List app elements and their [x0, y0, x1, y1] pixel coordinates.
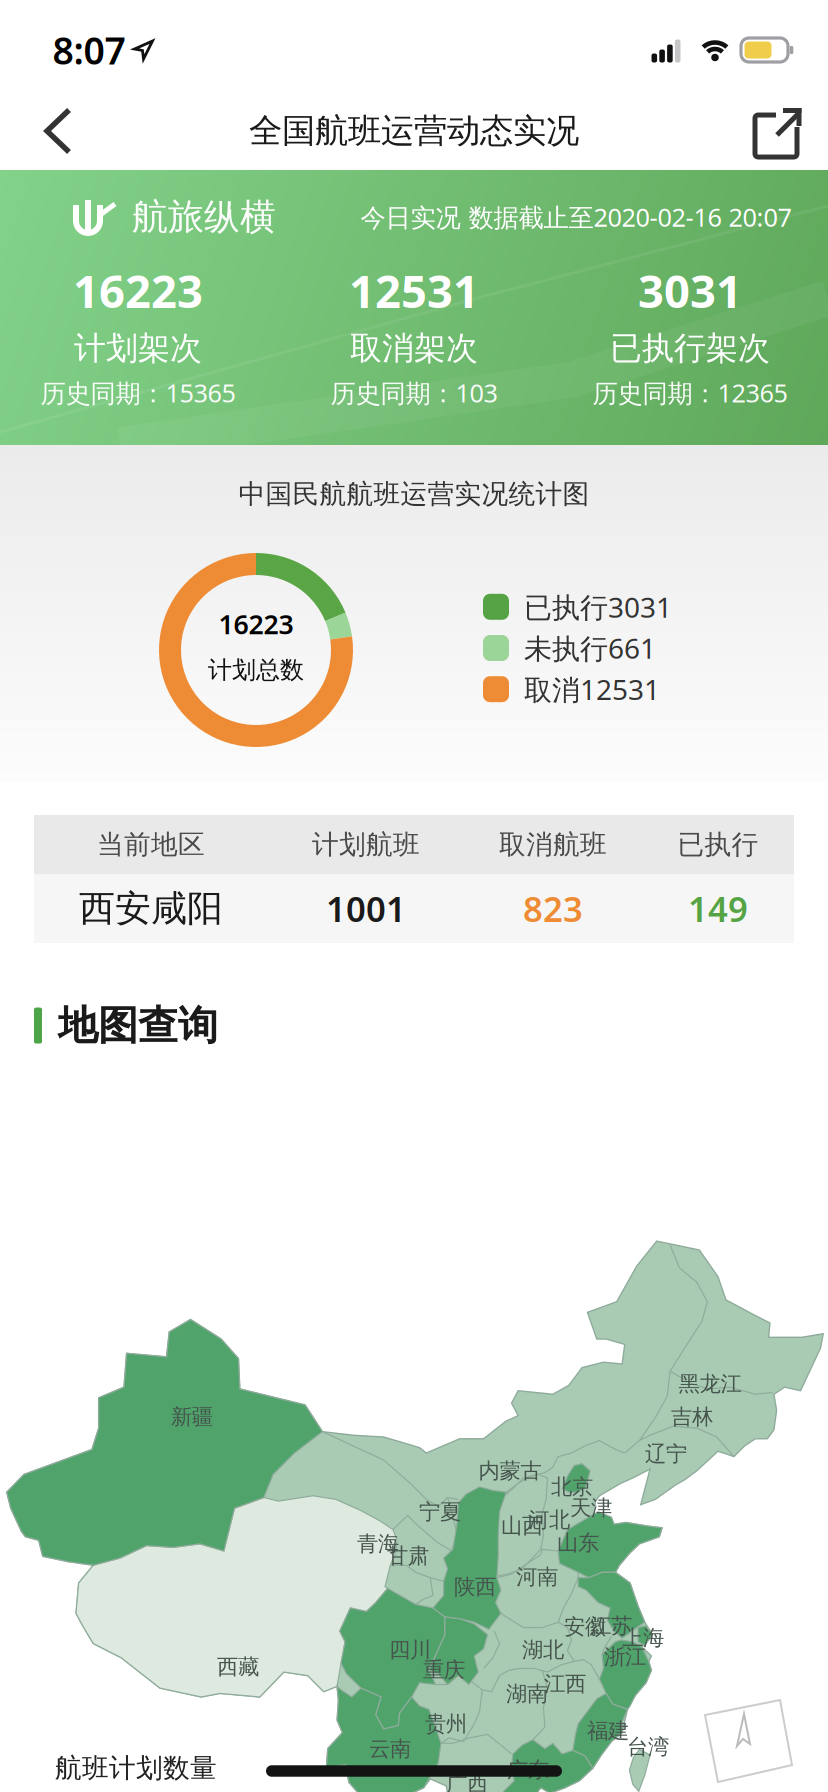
staticText: 北京 [551, 1474, 593, 1500]
staticText: 历史同期：103 [330, 376, 497, 409]
staticText: 陕西 [454, 1574, 496, 1600]
staticText: 16223 [73, 260, 203, 321]
staticText: 安徽 [564, 1614, 606, 1640]
staticText: 台湾 [627, 1734, 669, 1760]
staticText: 福建 [587, 1718, 629, 1744]
staticText: 8:07 [52, 25, 125, 75]
staticText: 山西 [501, 1513, 543, 1539]
staticText: 计划架次 [74, 329, 202, 368]
staticText: 贵州 [425, 1711, 467, 1737]
staticText: 航班计划数量 [55, 1752, 217, 1784]
staticText: 吉林 [671, 1404, 713, 1430]
staticText: 重庆 [423, 1657, 465, 1683]
staticText: 内蒙古 [478, 1458, 541, 1484]
staticText: 取消12531 [524, 671, 660, 708]
staticText: 浙江 [604, 1644, 646, 1670]
staticText: 计划航班 [312, 828, 420, 861]
staticText: 航旅纵横 [132, 195, 276, 239]
button[interactable]: 西安咸阳 [34, 874, 794, 943]
staticText: 青海 [357, 1531, 399, 1557]
staticText: 甘肃 [387, 1543, 429, 1569]
staticText: 河南 [516, 1564, 558, 1590]
staticText: 中国民航航班运营实况统计图 [238, 478, 589, 510]
button[interactable]: Share [755, 105, 805, 159]
staticText: 广东 [507, 1757, 549, 1783]
staticText: 今日实况 数据截止至2020-02-16 20:07 [360, 200, 791, 234]
staticText: 已执行 [677, 828, 758, 861]
staticText: 湖北 [522, 1637, 564, 1663]
staticText: 计划总数 [208, 655, 304, 685]
staticText: 河北 [528, 1507, 570, 1533]
staticText: 取消航班 [499, 828, 607, 861]
staticText: 四川 [389, 1637, 431, 1663]
staticText: 辽宁 [645, 1441, 687, 1467]
button[interactable]: Back [15, 90, 77, 172]
staticText: 16223 [218, 606, 293, 642]
staticText: 已执行3031 [524, 588, 672, 625]
staticText: 黑龙江 [678, 1371, 741, 1397]
staticText: 3031 [638, 260, 742, 321]
staticText: 湖南 [506, 1681, 548, 1707]
staticText: 1001 [326, 885, 406, 931]
staticText: 当前地区 [97, 828, 205, 861]
staticText: 广西 [446, 1771, 488, 1792]
staticText: 云南 [369, 1736, 411, 1762]
staticText: 新疆 [171, 1404, 213, 1430]
staticText: 已执行架次 [610, 329, 770, 368]
staticText: 宁夏 [419, 1499, 461, 1525]
staticText: 天津 [570, 1495, 612, 1521]
staticText: 全国航班运营动态实况 [249, 110, 579, 151]
staticText: 取消架次 [350, 329, 478, 368]
staticText: 未执行661 [524, 629, 656, 667]
staticText: 历史同期：15365 [40, 376, 235, 409]
staticText: 江苏 [590, 1613, 632, 1639]
staticText: 地图查询 [58, 1001, 218, 1050]
staticText: 西安咸阳 [79, 886, 223, 931]
staticText: 12531 [349, 260, 479, 321]
staticText: 江西 [544, 1671, 586, 1697]
staticText: 上海 [622, 1625, 664, 1651]
staticText: 山东 [557, 1530, 599, 1556]
staticText: 823 [523, 885, 583, 931]
staticText: 西藏 [217, 1654, 259, 1680]
staticText: 149 [688, 885, 748, 931]
staticText: 历史同期：12365 [592, 376, 787, 409]
